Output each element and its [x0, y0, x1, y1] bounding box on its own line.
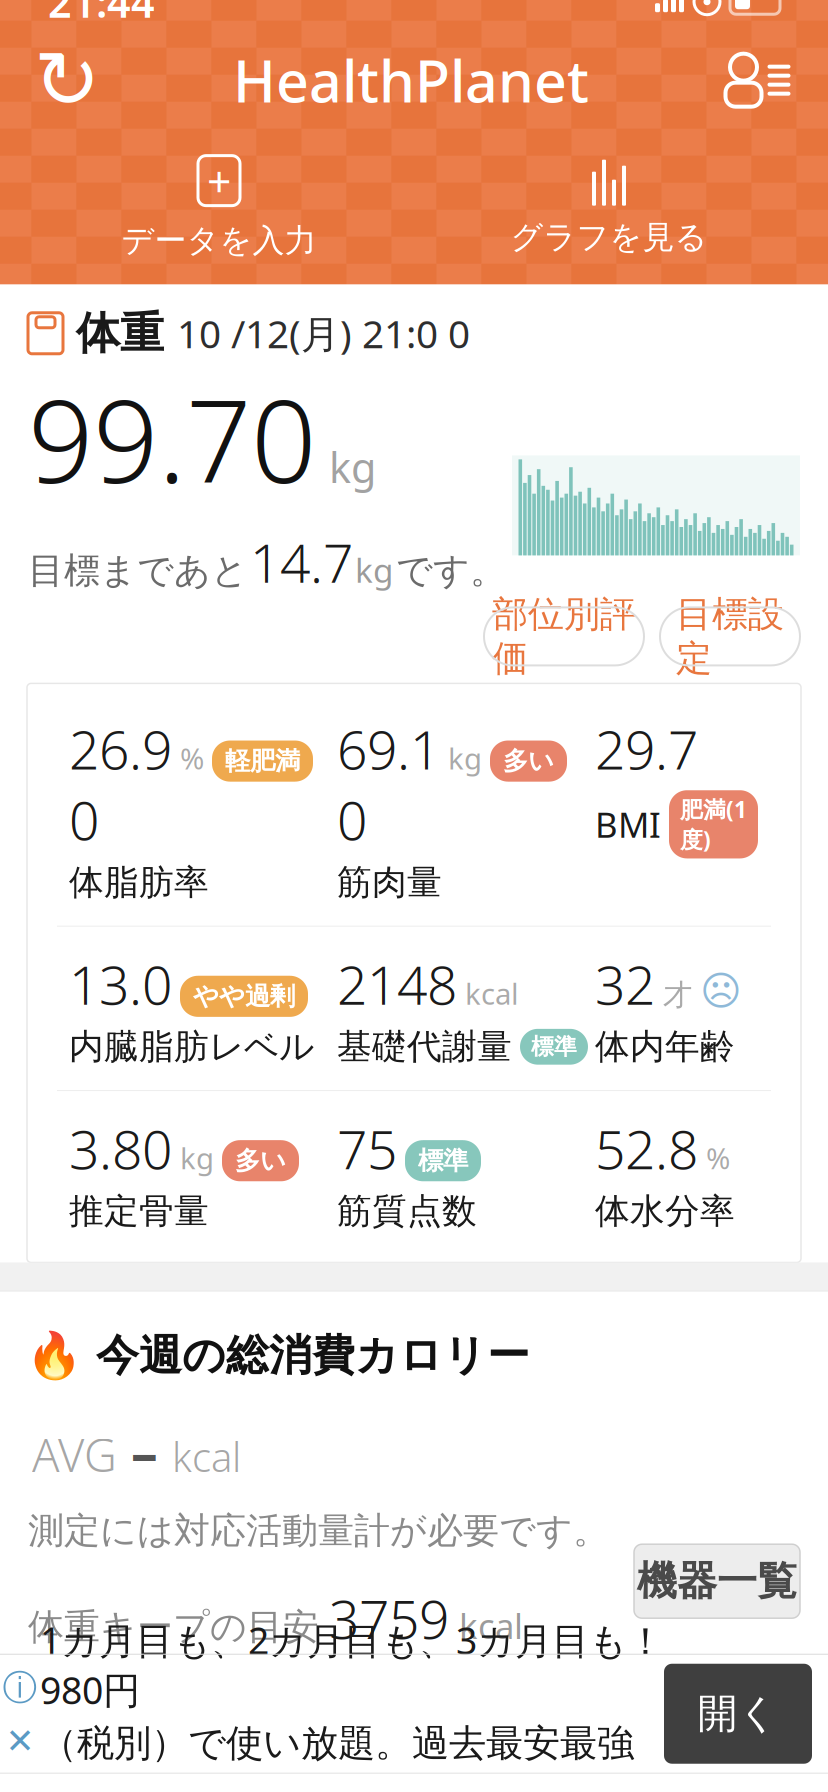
staticText: –: [131, 1416, 158, 1487]
staticText: です。: [396, 549, 506, 593]
staticText: 多い: [503, 745, 554, 777]
staticText: 99.70: [28, 362, 316, 515]
staticText: 才: [663, 977, 692, 1013]
staticText: 32: [595, 949, 655, 1019]
staticText: 目標まであと: [28, 549, 248, 593]
staticText: 体内年齢: [595, 1025, 735, 1068]
staticText: 内臓脂肪レベル: [69, 1025, 314, 1068]
button[interactable]: グラフを見る: [414, 156, 804, 257]
staticText: 体重キープの目安: [28, 1605, 319, 1649]
button[interactable]: Sync data: [26, 39, 108, 121]
staticText: %: [706, 1138, 730, 1177]
staticText: 今週の総消費カロリー: [96, 1329, 530, 1382]
staticText: データを入力: [121, 221, 316, 260]
staticText: 肥満(1度): [680, 794, 747, 854]
button[interactable]: ⓘ: [0, 1654, 828, 1774]
staticText: 多い: [235, 1145, 286, 1176]
staticText: 体水分率: [595, 1190, 735, 1232]
staticText: kg: [355, 548, 394, 592]
staticText: BMI: [595, 801, 661, 847]
button[interactable]: 機器一覧: [634, 1544, 800, 1618]
staticText: +: [207, 152, 231, 209]
staticText: 29.7: [595, 713, 698, 784]
staticText: kcal: [172, 1430, 241, 1483]
staticText: 13.0: [69, 949, 172, 1019]
staticText: 機器一覧: [637, 1557, 797, 1606]
staticText: HealthPlanet: [233, 42, 589, 118]
staticText: 体脂肪率: [69, 861, 209, 904]
staticText: kg: [329, 439, 376, 494]
staticText: やや過剰: [193, 981, 295, 1012]
staticText: 1カ月目も、2カ月目も、3カ月目も！980円: [40, 1615, 664, 1714]
staticText: 推定骨量: [69, 1190, 209, 1232]
staticText: 69.10: [337, 713, 440, 855]
staticText: kcal: [459, 1602, 523, 1648]
staticText: ☹: [700, 968, 742, 1014]
button[interactable]: +: [24, 152, 414, 260]
staticText: 21:44: [48, 0, 155, 29]
staticText: AVG: [32, 1424, 117, 1484]
staticText: グラフを見る: [510, 218, 707, 257]
staticText: ✕: [5, 1721, 34, 1761]
staticText: 測定には対応活動量計が必要です。: [28, 1509, 609, 1553]
staticText: 筋質点数: [337, 1190, 477, 1232]
staticText: 体重: [76, 306, 164, 360]
staticText: 開く: [697, 1689, 778, 1738]
staticText: 52.8: [595, 1113, 698, 1184]
button[interactable]: 目標設定: [660, 607, 800, 665]
staticText: ↻: [33, 35, 100, 126]
staticText: 3759: [329, 1583, 449, 1654]
staticText: 3.80: [69, 1113, 172, 1184]
staticText: 🔥: [26, 1330, 82, 1382]
staticText: 標準: [531, 1033, 577, 1061]
staticText: 2148: [337, 949, 457, 1019]
staticText: 10 /12(月) 21:0 0: [177, 308, 470, 359]
staticText: 筋肉量: [337, 861, 442, 904]
staticText: （税別）で使い放題。過去最安最強キャンペーン: [40, 1720, 634, 1792]
staticText: 26.90: [69, 713, 172, 855]
staticText: 14.7: [250, 527, 353, 597]
staticText: %: [180, 739, 204, 778]
staticText: 基礎代謝量: [337, 1025, 512, 1068]
staticText: kg: [180, 1138, 214, 1177]
button[interactable]: 部位別評価: [484, 607, 644, 665]
staticText: 目標設定: [676, 592, 784, 681]
staticText: 軽肥満: [225, 745, 300, 777]
staticText: kg: [448, 739, 482, 778]
staticText: 75: [337, 1113, 397, 1184]
staticText: 部位別評価: [492, 592, 636, 681]
staticText: ⓘ: [2, 1667, 37, 1709]
staticText: kcal: [465, 974, 519, 1013]
button[interactable]: Account and records: [714, 39, 802, 121]
staticText: 標準: [418, 1145, 468, 1176]
